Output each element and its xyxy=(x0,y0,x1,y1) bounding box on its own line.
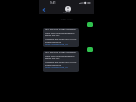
staticText: Want your vote participation xyxy=(45,55,75,58)
staticText: lorem ipsum nu xyxy=(45,64,62,67)
staticText: Hi! I am your ICMBK navigator xyxy=(45,51,77,54)
button[interactable]: Hi! I am your ICMBK navigator xyxy=(43,28,79,47)
staticText: https://exmpl.it/ab_cd xyxy=(45,43,68,46)
staticText: Alex M xyxy=(39,11,94,14)
button[interactable]: Hi! I am your ICMBK navigator xyxy=(43,51,79,72)
staticText: Available dev order our WT TFL xyxy=(45,61,77,64)
staticText: lorem ipsum nu xyxy=(45,41,62,44)
staticText: 9:41 xyxy=(50,1,56,5)
staticText: Hi! I am your ICMBK navigator xyxy=(45,28,77,31)
staticText: Want your vote participation xyxy=(45,32,75,35)
staticText: Today 10:42 xyxy=(39,18,94,21)
staticText: barrel our TFL. xyxy=(45,57,60,60)
button[interactable]: Sent message xyxy=(87,47,93,52)
staticText: https://exmpl.it/ab_cd xyxy=(45,66,68,69)
staticText: Available dev order our WT TFL xyxy=(45,38,77,41)
button[interactable]: Contact avatar xyxy=(65,6,71,12)
staticText: barrel our TFL. xyxy=(45,34,60,37)
button[interactable]: Back xyxy=(41,7,46,12)
button[interactable]: Sent message xyxy=(87,22,93,27)
